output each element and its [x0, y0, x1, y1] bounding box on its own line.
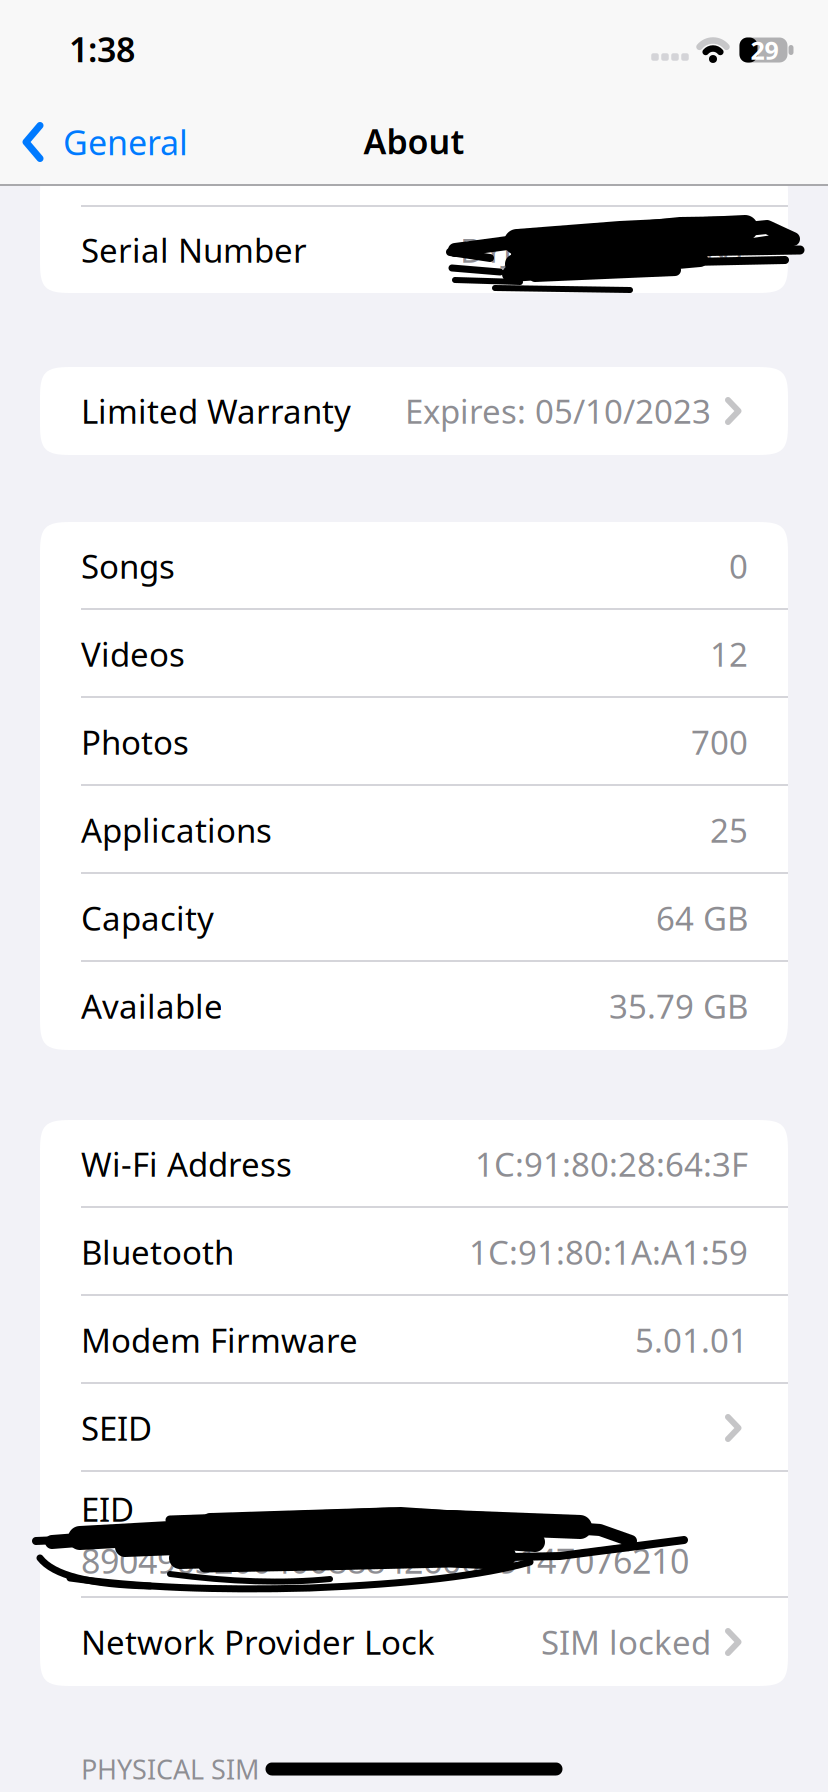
staticText: Songs: [81, 543, 175, 588]
button[interactable]: Network Provider Lock: [40, 1598, 788, 1686]
staticText: Modem Firmware: [81, 1317, 358, 1362]
staticText: SIM locked: [541, 1619, 711, 1664]
staticText: 64 GB: [656, 895, 748, 940]
staticText: Network Provider Lock: [81, 1619, 435, 1664]
staticText: 700: [691, 719, 748, 764]
staticText: Bluetooth: [81, 1229, 234, 1274]
staticText: 29: [750, 33, 778, 67]
staticText: Photos: [81, 719, 189, 764]
staticText: About: [363, 118, 464, 164]
button[interactable]: Limited Warranty: [40, 367, 788, 455]
staticText: Videos: [81, 631, 185, 676]
staticText: DYJC4K80L80VKNT: [460, 227, 748, 272]
staticText: SEID: [81, 1405, 152, 1450]
staticText: 35.79 GB: [609, 983, 748, 1028]
staticText: Serial Number: [81, 227, 307, 272]
button[interactable]: Back to General: [22, 119, 188, 165]
staticText: Limited Warranty: [81, 388, 351, 433]
staticText: 89049032004008884260089147076210: [81, 1537, 689, 1584]
staticText: 1:38: [69, 26, 135, 72]
button[interactable]: SEID: [40, 1384, 788, 1472]
staticText: General: [63, 119, 188, 165]
staticText: 1C:91:80:28:64:3F: [475, 1141, 748, 1186]
staticText: EID: [81, 1486, 134, 1531]
staticText: Applications: [81, 807, 272, 852]
staticText: 1C:91:80:1A:A1:59: [469, 1229, 748, 1274]
staticText: PHYSICAL SIM: [81, 1751, 259, 1787]
staticText: Expires: 05/10/2023: [405, 388, 711, 433]
staticText: Capacity: [81, 895, 214, 940]
staticText: 25: [710, 807, 748, 852]
staticText: Available: [81, 983, 223, 1028]
staticText: 0: [729, 543, 748, 588]
staticText: Wi-Fi Address: [81, 1141, 292, 1186]
staticText: 12: [710, 631, 748, 676]
staticText: 5.01.01: [635, 1317, 748, 1362]
